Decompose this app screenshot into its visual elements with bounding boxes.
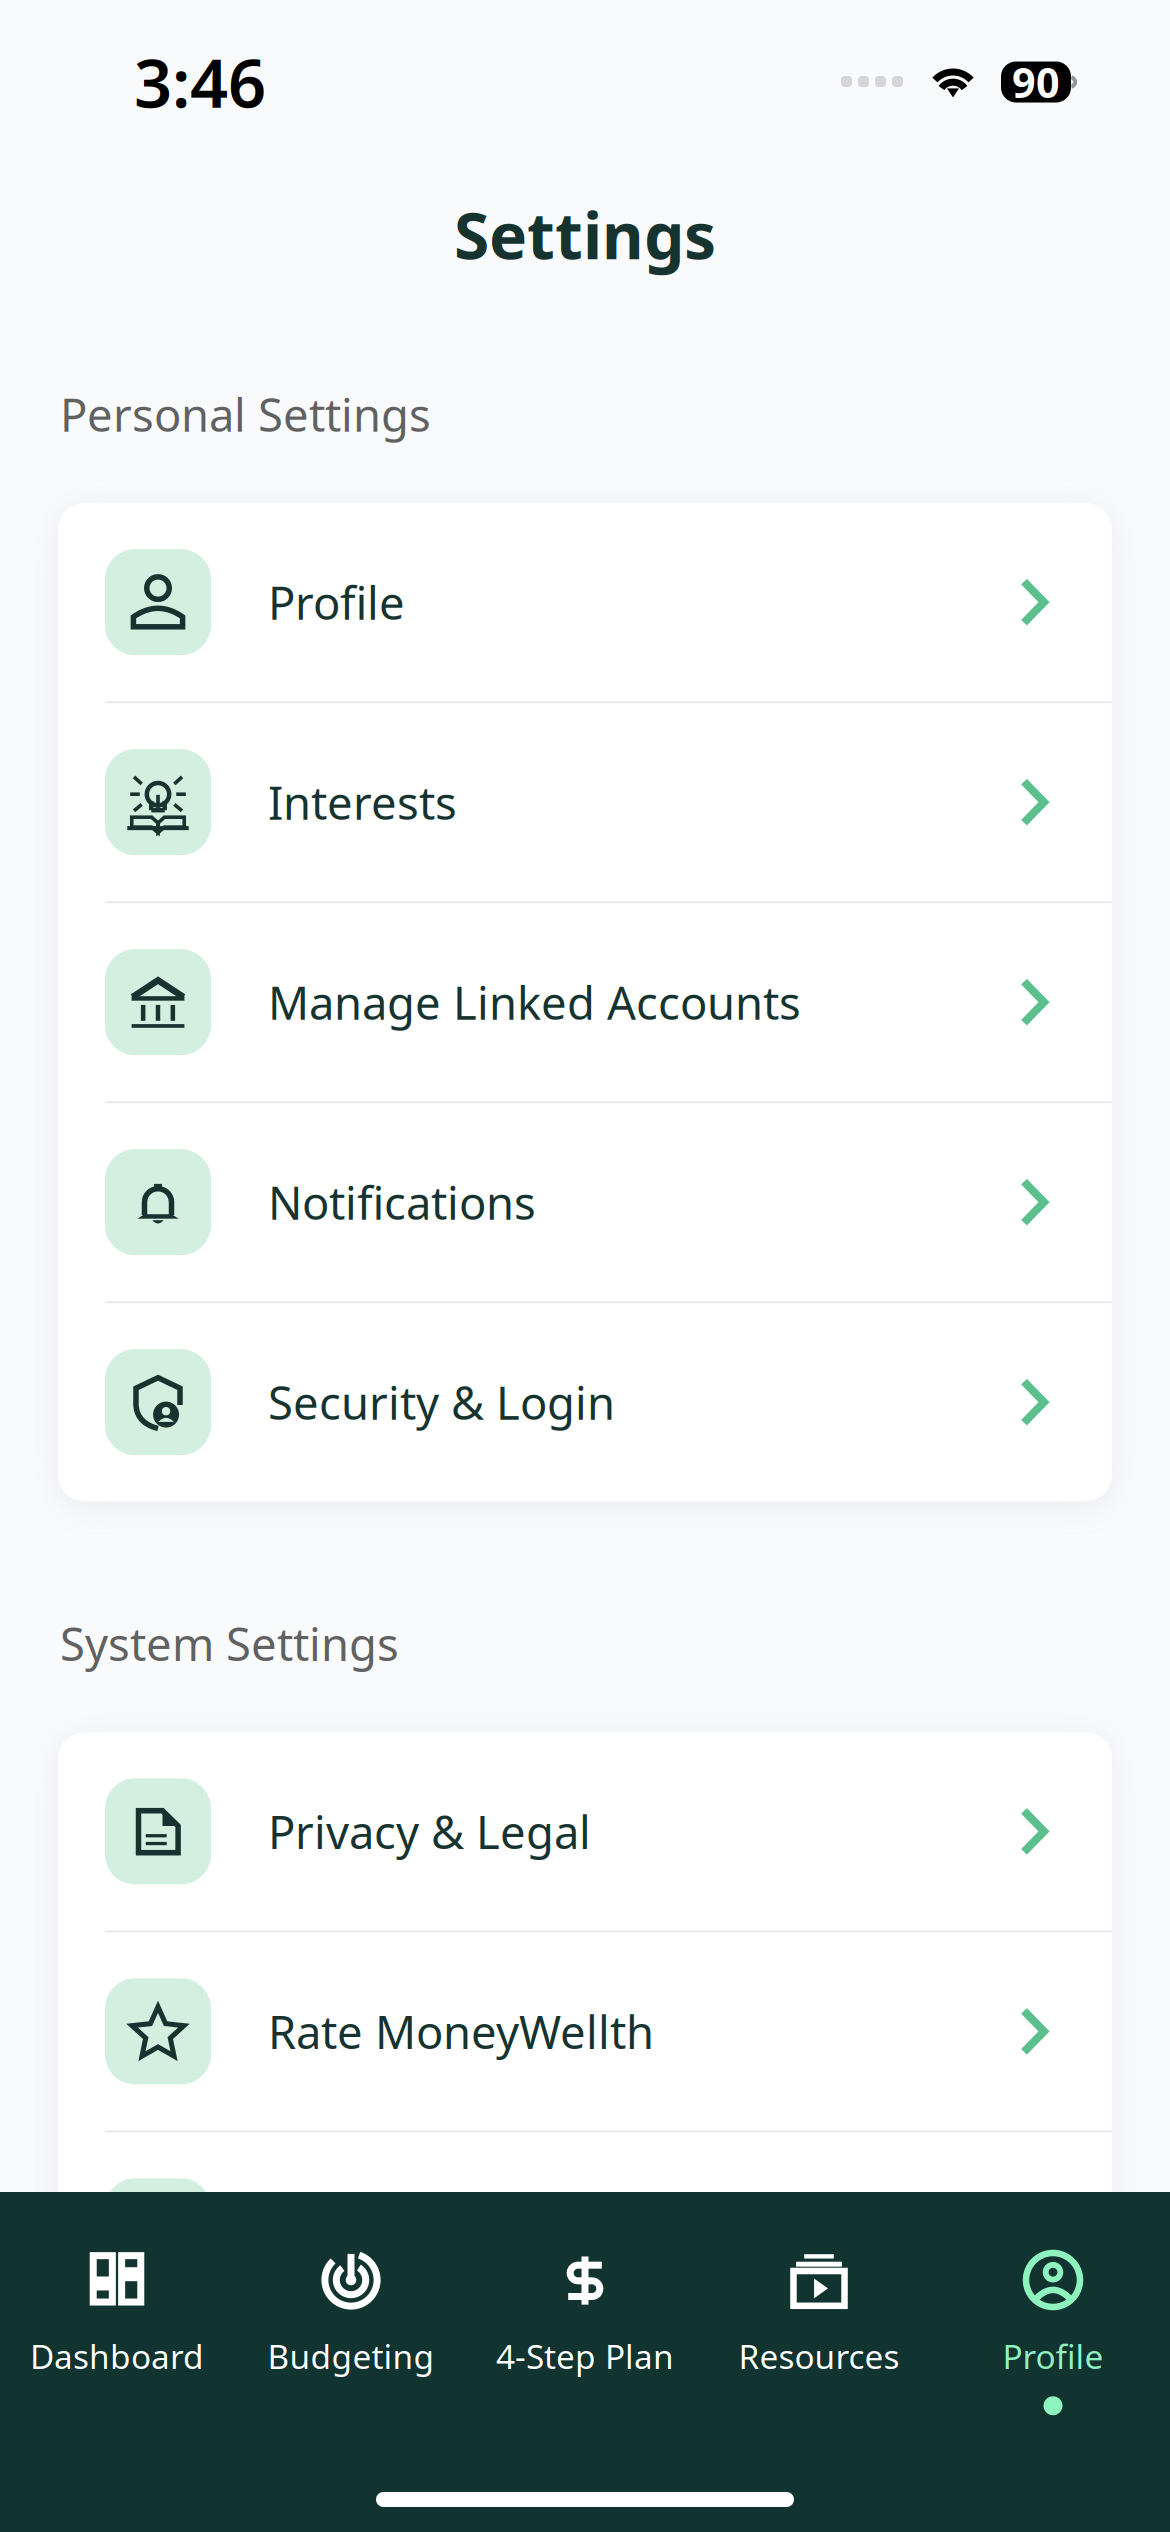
staticText: Profile bbox=[1002, 2334, 1103, 2378]
staticText: Budgeting bbox=[267, 2334, 434, 2378]
staticText: Resources bbox=[738, 2334, 899, 2378]
button[interactable]: Resources bbox=[702, 2192, 936, 2342]
button[interactable]: Profile bbox=[936, 2192, 1170, 2342]
button[interactable]: Dashboard bbox=[0, 2192, 234, 2342]
button[interactable]: Security & Login bbox=[58, 1303, 1112, 1501]
staticText: 90 bbox=[1012, 55, 1060, 109]
staticText: Security & Login bbox=[268, 1372, 615, 1432]
button[interactable]: Budgeting bbox=[234, 2192, 468, 2342]
button[interactable]: Manage Linked Accounts bbox=[58, 903, 1112, 1101]
staticText: Settings bbox=[454, 192, 716, 277]
button[interactable]: Privacy & Legal bbox=[58, 1732, 1112, 1930]
staticText: 3:46 bbox=[134, 38, 266, 126]
staticText: Notifications bbox=[268, 1172, 536, 1232]
staticText: System Settings bbox=[60, 1613, 399, 1673]
staticText: MoneyWellth Support bbox=[268, 2201, 730, 2261]
staticText: Interests bbox=[268, 772, 457, 832]
staticText: Personal Settings bbox=[60, 384, 431, 444]
button[interactable]: Rate MoneyWellth bbox=[58, 1932, 1112, 2130]
button[interactable]: Interests bbox=[58, 703, 1112, 901]
staticText: 4-Step Plan bbox=[496, 2334, 674, 2378]
staticText: Manage Linked Accounts bbox=[268, 972, 801, 1032]
button[interactable]: 4-Step Plan bbox=[468, 2192, 702, 2342]
staticText: Dashboard bbox=[30, 2334, 204, 2378]
staticText: Privacy & Legal bbox=[268, 1801, 591, 1861]
staticText: Profile bbox=[268, 572, 405, 632]
button[interactable]: MoneyWellth Support bbox=[58, 2132, 1112, 2330]
button[interactable]: Profile bbox=[58, 503, 1112, 701]
staticText: Rate MoneyWellth bbox=[268, 2001, 654, 2061]
button[interactable]: Notifications bbox=[58, 1103, 1112, 1301]
